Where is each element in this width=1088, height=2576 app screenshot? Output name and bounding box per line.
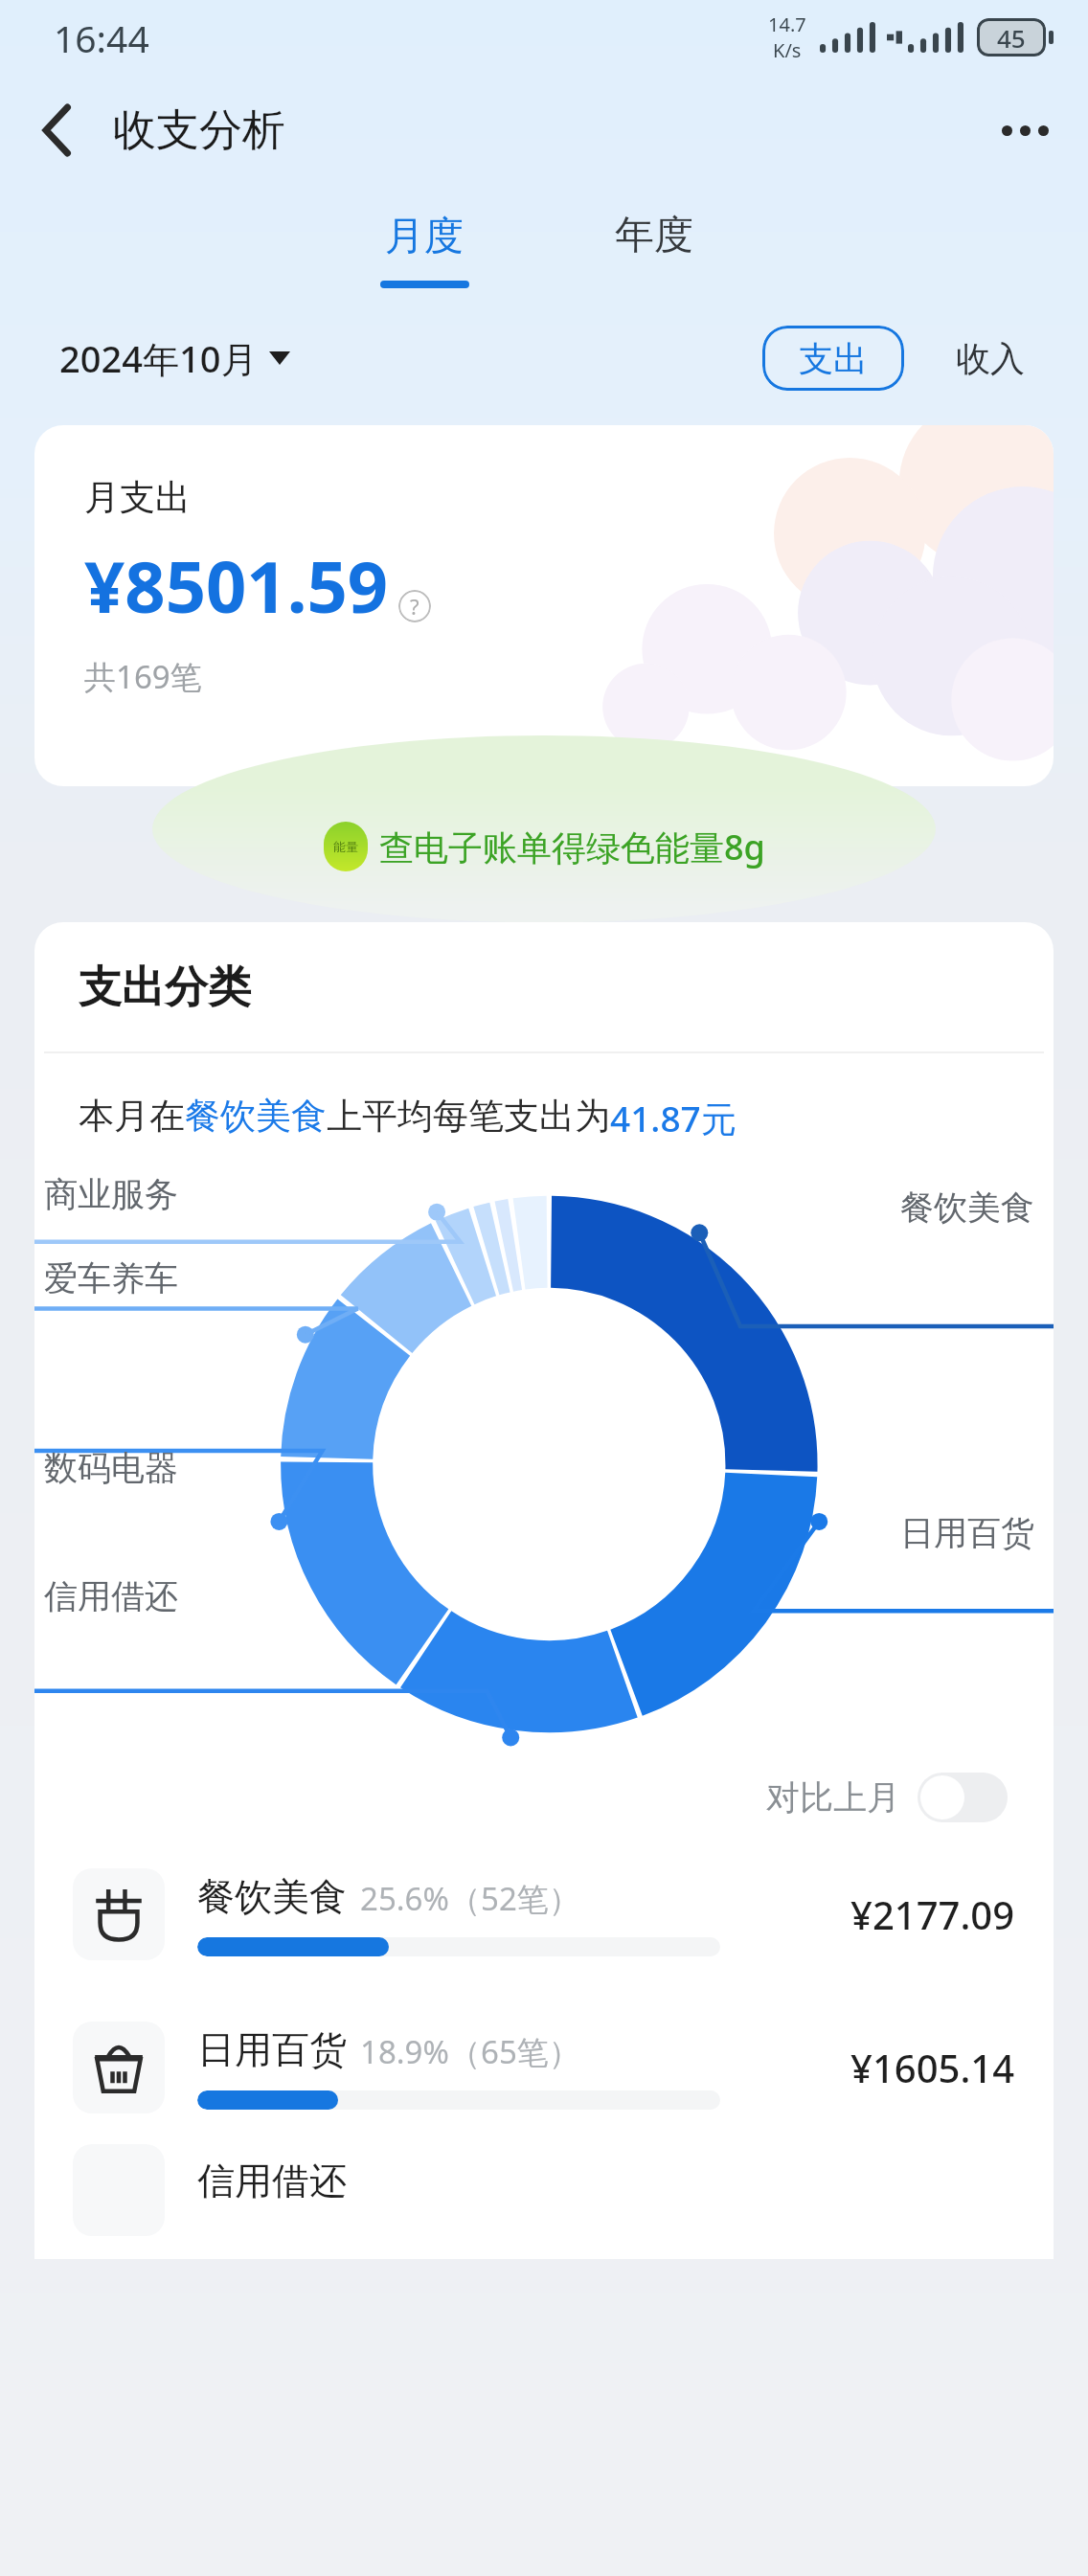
staticText: 45 [997,21,1026,55]
staticText: 25.6% [360,1877,449,1920]
button[interactable]: 收入 [948,331,1032,386]
staticText: 18.9% [360,2030,449,2073]
staticText: 共169笔 [84,655,202,698]
staticText: 收支分析 [113,103,285,158]
staticText: 对比上月 [766,1776,900,1819]
button[interactable]: 月度 [375,208,473,265]
button[interactable]: 信用借还 [34,2144,1054,2259]
staticText: 餐饮美食 [185,1094,327,1139]
staticText: （65笔） [449,2030,580,2073]
staticText: 支出 [799,337,868,380]
button[interactable]: Back [21,94,94,167]
button[interactable]: More options [986,92,1063,169]
button[interactable]: 能量 [316,818,773,875]
button[interactable]: 年度 [605,207,703,264]
staticText: 2024年10月 [59,333,258,383]
staticText: 餐饮美食 [900,1186,1034,1229]
staticText: 日用百货 [900,1512,1034,1554]
button[interactable]: 月支出 [34,425,1054,786]
staticText: 16:44 [54,12,149,63]
staticText: ? [410,592,419,621]
staticText: 能量 [333,839,358,854]
staticText: 收入 [956,337,1025,380]
staticText: 查电子账单得绿色能量8g [379,824,765,870]
staticText: （52笔） [449,1877,580,1920]
button[interactable]: 2024年10月 [56,329,294,387]
staticText: K/s [773,37,802,63]
staticText: 爱车养车 [44,1257,178,1299]
staticText: 年度 [615,211,693,260]
button[interactable]: 对比上月 [759,1765,1015,1830]
button[interactable]: 支出 [762,326,904,391]
staticText: 月度 [385,212,464,261]
staticText: ¥2177.09 [850,1888,1015,1940]
staticText: 14.7 [768,11,806,37]
staticText: 餐饮美食 [197,1873,347,1920]
staticText: 本月在 [79,1094,185,1139]
button[interactable]: Info [398,590,431,622]
staticText: 数码电器 [44,1447,178,1489]
staticText: 信用借还 [44,1575,178,1617]
staticText: ¥8501.59 [84,537,389,634]
staticText: 上平均每笔支出为 [327,1094,610,1139]
button[interactable]: 餐饮美食 [34,1838,1054,1991]
staticText: 信用借还 [197,2158,347,2204]
staticText: 41.87元 [610,1094,737,1142]
staticText: 月支出 [84,475,191,520]
staticText: 商业服务 [44,1173,178,1215]
button[interactable]: 日用百货 [34,1991,1054,2144]
staticText: 日用百货 [197,2026,347,2073]
staticText: ¥1605.14 [850,2042,1015,2093]
staticText: 支出分类 [79,960,251,1015]
